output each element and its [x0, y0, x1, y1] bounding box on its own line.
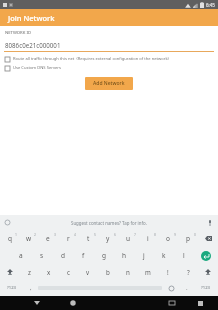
button[interactable]: m [138, 264, 158, 280]
staticText: v [86, 268, 90, 276]
button[interactable]: h [114, 247, 134, 264]
staticText: h [122, 251, 127, 260]
other: Voice input [208, 220, 212, 226]
button[interactable]: k [154, 247, 174, 264]
staticText: u [126, 234, 131, 243]
button[interactable]: l [174, 247, 194, 264]
staticText: i [147, 234, 149, 243]
staticText: n [126, 268, 130, 276]
staticText: 1 [15, 232, 17, 237]
button[interactable]: i [138, 230, 158, 247]
staticText: p [186, 234, 190, 243]
staticText: e [46, 234, 50, 243]
staticText: f [82, 251, 85, 260]
staticText: 8086c0e21c000001 [5, 41, 61, 49]
staticText: y [106, 234, 110, 243]
staticText: Suggest contact names? Tap for info. [71, 220, 147, 226]
staticText: ! [167, 268, 169, 276]
button[interactable]: Backspace [198, 230, 218, 247]
button[interactable]: p [178, 230, 198, 247]
staticText: a [19, 251, 23, 260]
button[interactable]: ?123 [194, 280, 218, 296]
staticText: ? [187, 268, 190, 276]
staticText: b [106, 268, 110, 276]
button[interactable]: Recents [194, 297, 206, 309]
button[interactable]: ! [158, 264, 178, 280]
staticText: . [186, 284, 188, 292]
button[interactable]: f [73, 247, 94, 264]
button[interactable]: a [10, 247, 31, 264]
staticText: z [28, 268, 31, 276]
staticText: g [102, 251, 106, 260]
staticText: ?123 [201, 285, 211, 291]
button[interactable]: Shift right [198, 264, 218, 280]
button[interactable]: w [19, 230, 38, 247]
staticText: w [26, 234, 32, 243]
staticText: q [8, 234, 12, 243]
staticText: o [166, 234, 170, 243]
button[interactable]: ? [178, 264, 198, 280]
button[interactable]: Shift [0, 264, 20, 280]
button[interactable]: , [24, 280, 38, 296]
staticText: t [87, 234, 90, 243]
button[interactable]: b [98, 264, 118, 280]
staticText: d [61, 251, 65, 260]
button[interactable]: q [0, 230, 19, 247]
button[interactable]: Add Network [85, 77, 133, 90]
button[interactable]: r [58, 230, 78, 247]
button[interactable]: u [118, 230, 138, 247]
button[interactable]: Emoji [162, 280, 180, 296]
staticText: Join Network [8, 13, 55, 23]
staticText: l [183, 251, 185, 260]
button[interactable]: Use Custom DNS Servers [0, 65, 218, 71]
button[interactable]: c [58, 264, 78, 280]
button[interactable]: Route all traffic through this net (Requ… [0, 56, 218, 62]
button[interactable]: . [180, 280, 194, 296]
staticText: 9 [174, 232, 176, 237]
staticText: Add Network [93, 80, 125, 87]
button[interactable]: y [98, 230, 118, 247]
staticText: 5 [94, 232, 96, 237]
staticText: Use Custom DNS Servers [13, 65, 61, 71]
button[interactable]: e [38, 230, 58, 247]
staticText: r [67, 234, 70, 243]
staticText: j [143, 251, 145, 260]
button[interactable]: g [94, 247, 114, 264]
staticText: k [162, 251, 166, 260]
staticText: m [145, 268, 151, 276]
staticText: 2 [34, 232, 36, 237]
staticText: 6 [114, 232, 116, 237]
button[interactable]: o [158, 230, 178, 247]
staticText: c [67, 268, 70, 276]
button[interactable]: ?123 [0, 280, 24, 296]
staticText: , [30, 284, 32, 292]
button[interactable]: z [20, 264, 39, 280]
button[interactable]: Back [30, 296, 44, 310]
staticText: 7 [134, 232, 136, 237]
staticText: x [47, 268, 51, 276]
button[interactable]: Home [66, 296, 80, 310]
button[interactable]: j [134, 247, 154, 264]
button[interactable]: v [78, 264, 98, 280]
staticText: Route all traffic through this net (Requ… [13, 56, 169, 62]
button[interactable]: Enter [194, 247, 218, 264]
staticText: 6:45 [206, 2, 215, 8]
staticText: s [40, 251, 44, 260]
button[interactable]: x [39, 264, 58, 280]
staticText: 8 [154, 232, 156, 237]
staticText: 3 [54, 232, 56, 237]
button[interactable]: d [52, 247, 73, 264]
button[interactable]: n [118, 264, 138, 280]
staticText: NETWORK ID [5, 30, 32, 36]
button[interactable]: s [31, 247, 52, 264]
staticText: 0 [194, 232, 196, 237]
button[interactable]: t [78, 230, 98, 247]
staticText: ?123 [7, 285, 17, 291]
staticText: 4 [74, 232, 76, 237]
button[interactable]: Keyboard [166, 297, 178, 309]
